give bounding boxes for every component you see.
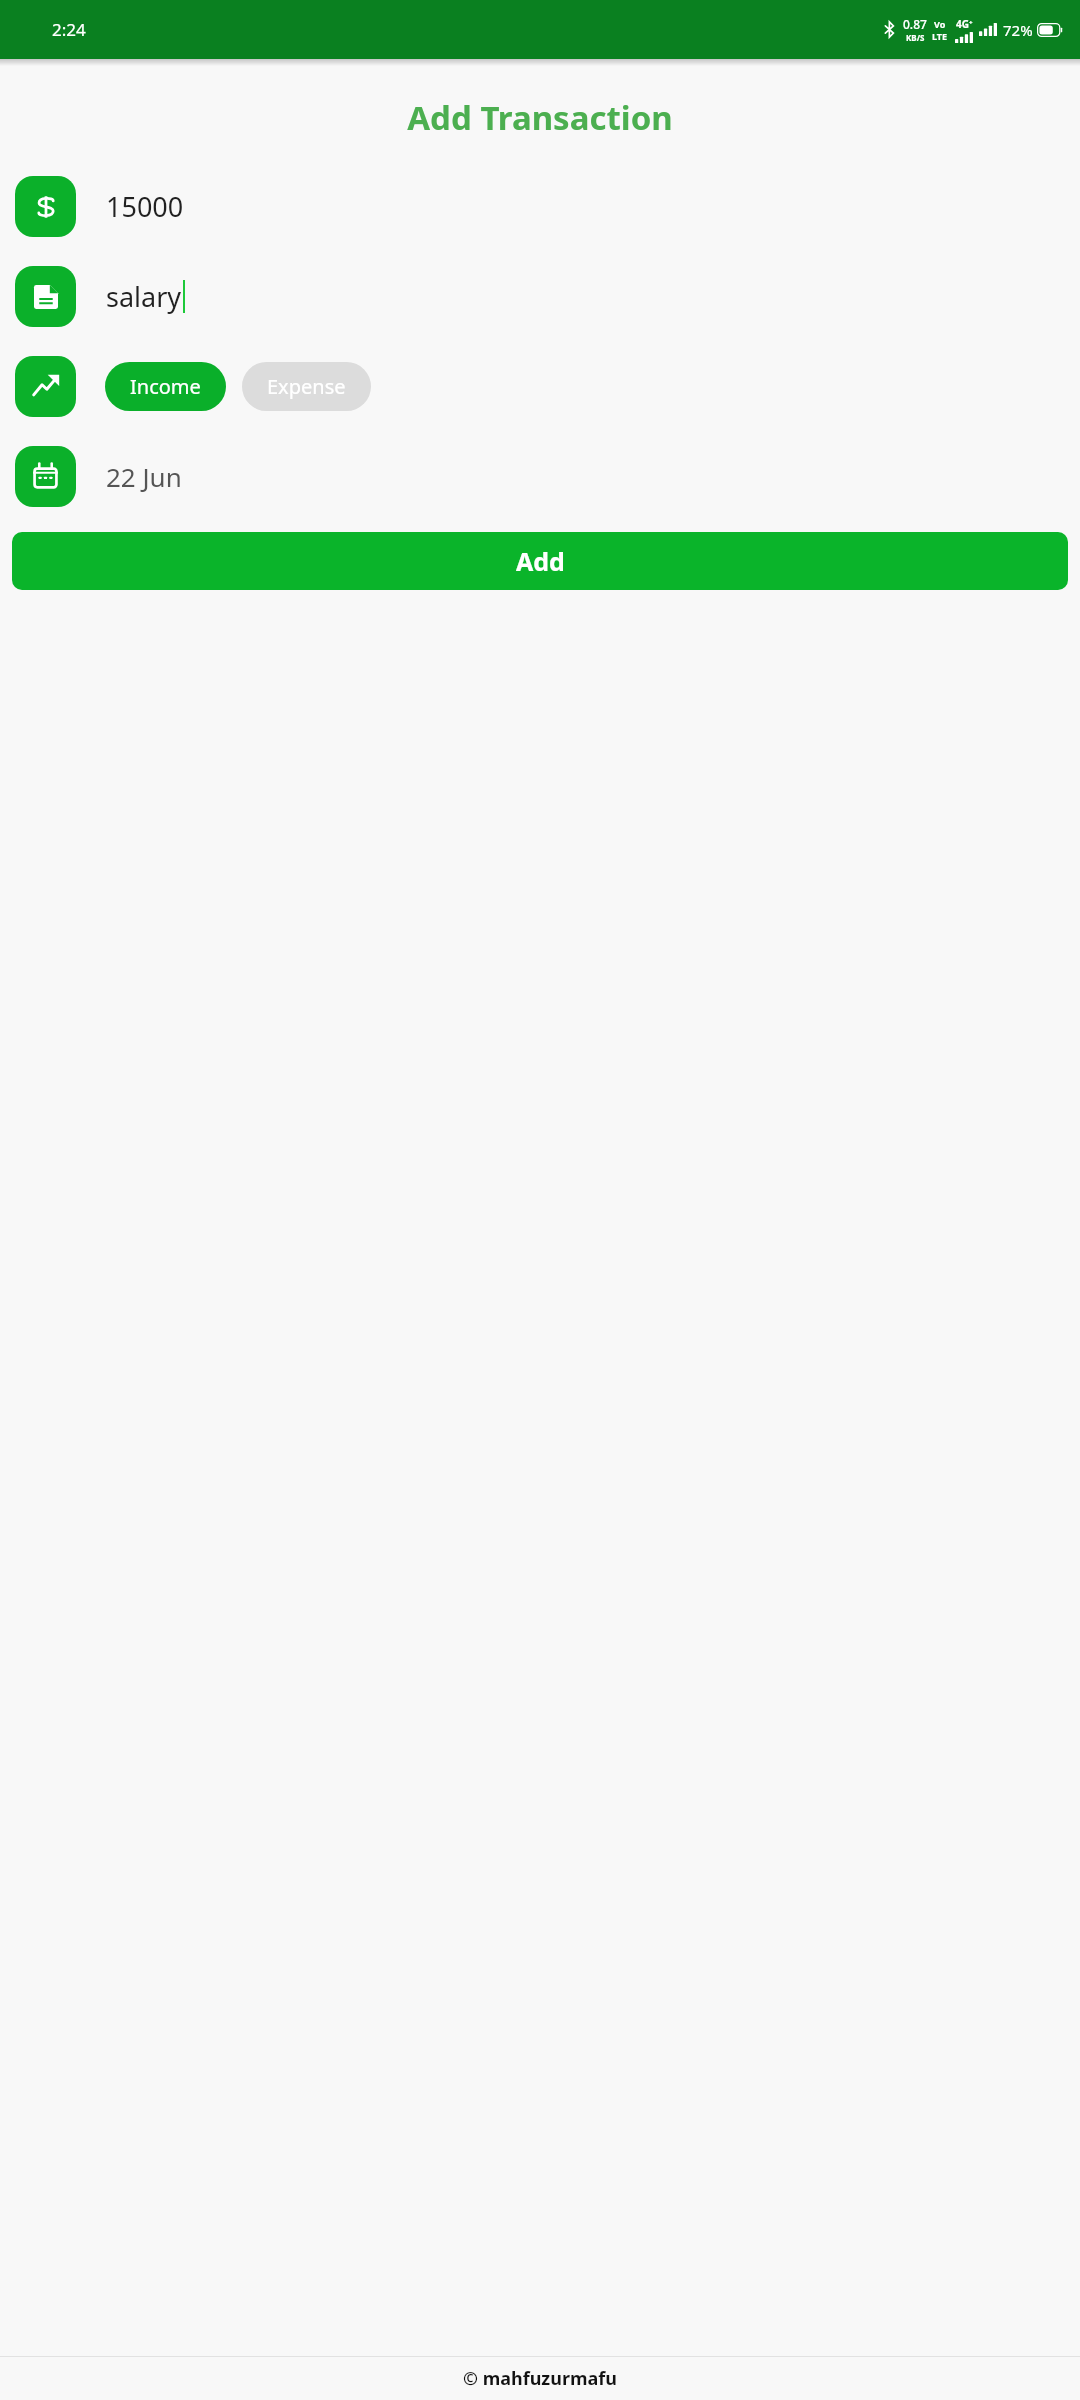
staticText: Expense xyxy=(267,373,346,400)
button[interactable]: Add xyxy=(12,532,1068,590)
staticText: 4G⁺ xyxy=(956,17,973,31)
staticText: Add Transaction xyxy=(0,95,1080,140)
staticText: © mahfuzurmafu xyxy=(463,2366,617,2391)
staticText: 15000 xyxy=(106,188,184,225)
staticText: KB/S xyxy=(906,32,925,43)
button[interactable]: Date xyxy=(15,446,76,507)
button[interactable]: Note xyxy=(15,266,76,327)
staticText: Vo xyxy=(934,18,946,30)
staticText: 22 Jun xyxy=(106,459,182,494)
button[interactable]: 15000 xyxy=(106,188,1080,225)
button[interactable]: Expense xyxy=(242,362,371,411)
button[interactable]: 22 Jun xyxy=(106,459,1080,494)
staticText: salary xyxy=(106,278,182,315)
button[interactable]: Amount xyxy=(15,176,76,237)
staticText: 72% xyxy=(1003,20,1033,40)
staticText: 0.87 xyxy=(903,16,927,32)
staticText: LTE xyxy=(932,30,948,42)
staticText: Add xyxy=(516,544,565,578)
staticText: Income xyxy=(130,373,201,400)
staticText: 2:24 xyxy=(52,18,86,41)
button[interactable]: salary xyxy=(106,278,1080,315)
button[interactable]: Income xyxy=(105,362,226,411)
button[interactable]: Transaction type xyxy=(15,356,76,417)
